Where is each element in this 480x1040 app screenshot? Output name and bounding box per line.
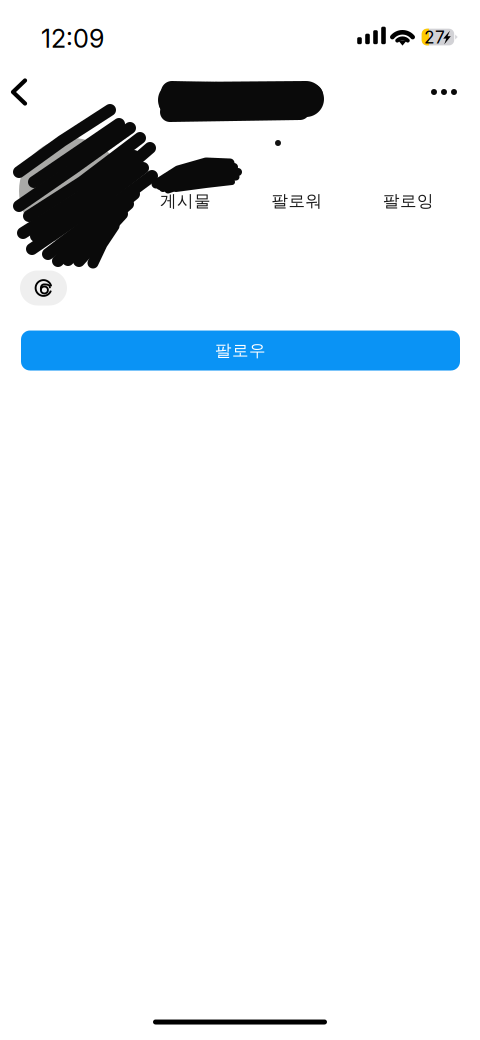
staticText: 팔로워 — [271, 191, 322, 211]
button[interactable]: Threads — [0, 0, 480, 1040]
button[interactable]: 게시물 — [0, 0, 480, 1040]
staticText: 12:09 — [41, 23, 104, 54]
button[interactable]: More options — [0, 0, 480, 1040]
staticText: 팔로잉 — [383, 191, 434, 211]
button[interactable]: Back — [0, 0, 480, 1040]
button[interactable]: 팔로워 — [0, 0, 480, 1040]
button[interactable]: 팔로잉 — [0, 0, 480, 1040]
staticText: 게시물 — [160, 191, 211, 211]
staticText: 팔로우 — [215, 340, 266, 361]
button[interactable]: 팔로우 — [0, 0, 480, 1040]
staticText: 27 — [424, 27, 445, 48]
